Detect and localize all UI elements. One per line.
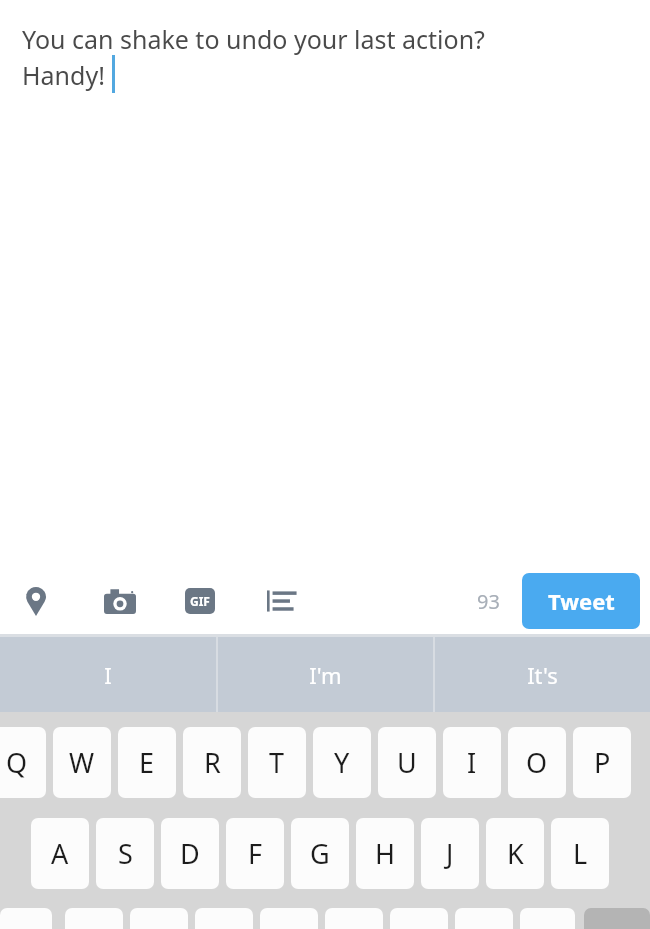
button[interactable]: J [421,818,479,889]
button[interactable]: Add poll [262,581,302,621]
staticText: Y [334,744,350,781]
button[interactable] [130,908,188,929]
button[interactable]: Tweet [522,573,640,629]
staticText: GIF [190,593,210,609]
button[interactable]: Q [0,727,46,798]
button[interactable]: Y [313,727,371,798]
staticText: You can shake to undo your last action? [22,22,485,56]
button[interactable] [455,908,513,929]
staticText: Handy! [22,58,112,92]
staticText: T [269,744,285,781]
button[interactable]: R [183,727,241,798]
button[interactable] [325,908,383,929]
button[interactable]: H [356,818,414,889]
staticText: F [248,835,263,872]
staticText: W [69,744,95,781]
button[interactable]: I [443,727,501,798]
button[interactable]: L [551,818,609,889]
button[interactable]: G [291,818,349,889]
staticText: I [467,744,477,781]
staticText: O [526,744,548,781]
button[interactable]: It's [435,637,650,712]
button[interactable] [390,908,448,929]
button[interactable]: K [486,818,544,889]
button[interactable]: U [378,727,436,798]
button[interactable] [260,908,318,929]
staticText: L [573,835,588,872]
staticText: S [118,835,133,872]
button[interactable]: P [573,727,631,798]
button[interactable]: T [248,727,306,798]
button[interactable]: Add location [16,581,56,621]
button[interactable]: A [31,818,89,889]
staticText: R [204,744,221,781]
staticText: H [375,835,396,872]
staticText: It's [527,660,558,690]
button[interactable]: Add GIF [180,581,220,621]
staticText: Tweet [548,586,615,616]
staticText: I'm [309,660,342,690]
staticText: U [397,744,417,781]
staticText: I [104,660,112,690]
staticText: E [139,744,155,781]
staticText: K [507,835,524,872]
staticText: 93 [477,588,500,615]
button[interactable] [520,908,575,929]
button[interactable]: I [0,637,216,712]
button[interactable]: S [96,818,154,889]
button[interactable]: Add photo [100,581,140,621]
button[interactable]: I'm [218,637,433,712]
staticText: P [594,744,611,781]
staticText: J [446,835,454,872]
staticText: G [310,835,330,872]
button[interactable]: F [226,818,284,889]
button[interactable]: E [118,727,176,798]
button[interactable]: You can shake to undo your last action? [22,22,650,94]
button[interactable] [584,908,650,929]
button[interactable]: O [508,727,566,798]
staticText: D [180,835,200,872]
button[interactable]: W [53,727,111,798]
button[interactable]: D [161,818,219,889]
staticText: A [51,835,69,872]
button[interactable] [0,908,52,929]
button[interactable] [195,908,253,929]
staticText: Q [6,744,28,781]
button[interactable] [65,908,123,929]
